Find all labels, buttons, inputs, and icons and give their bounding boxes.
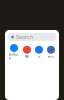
staticText: Search [16, 33, 33, 41]
staticText: FB [37, 55, 40, 58]
staticText: Mail [24, 55, 29, 58]
staticText: More [47, 55, 54, 58]
staticText: AirDrop [9, 53, 19, 60]
